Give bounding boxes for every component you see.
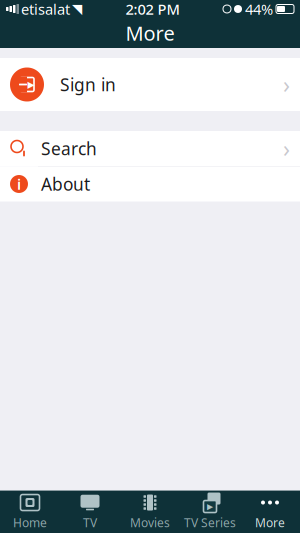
staticText: ▶ [207, 502, 213, 511]
staticText: More [125, 20, 174, 46]
button[interactable]: Home [0, 490, 60, 533]
button[interactable]: Movies [120, 490, 180, 533]
staticText: TV [83, 514, 97, 530]
staticText: › [283, 133, 290, 163]
staticText: Search [41, 137, 97, 160]
button[interactable]: Search [0, 131, 300, 166]
staticText: TV Series [184, 514, 236, 530]
staticText: More [255, 514, 285, 530]
button[interactable]: ▶ [180, 490, 240, 533]
staticText: 44% [245, 0, 273, 19]
staticText: i [17, 174, 21, 194]
staticText: Home [13, 514, 47, 530]
staticText: Movies [130, 514, 170, 530]
staticText: About [41, 172, 90, 195]
staticText: ◥ [72, 1, 82, 16]
staticText: › [283, 69, 290, 99]
button[interactable]: TV [60, 490, 120, 533]
button[interactable]: More [240, 490, 300, 533]
staticText: Sign in [60, 73, 116, 96]
button[interactable]: ▶ [0, 58, 300, 111]
staticText: ▶ [27, 79, 34, 90]
button[interactable]: i [0, 166, 300, 201]
staticText: 2:02 PM [125, 0, 179, 19]
staticText: etisalat [21, 0, 70, 19]
